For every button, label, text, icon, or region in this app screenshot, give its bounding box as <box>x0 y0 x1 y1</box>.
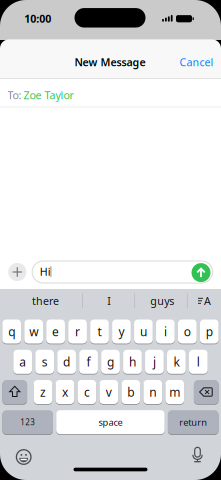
button[interactable]: To: <box>0 81 221 109</box>
staticText: 10:00 <box>24 11 51 26</box>
staticText: o <box>184 323 191 339</box>
button[interactable] <box>8 262 27 281</box>
button[interactable]: space <box>56 410 165 435</box>
button[interactable]: a <box>13 349 32 374</box>
button[interactable]: n <box>143 379 162 404</box>
staticText: Zoe Taylor <box>23 88 73 102</box>
button[interactable]: return <box>168 410 218 435</box>
staticText: j <box>153 354 156 370</box>
button[interactable]: b <box>121 379 140 404</box>
staticText: u <box>140 323 147 339</box>
staticText: m <box>169 384 180 400</box>
staticText: r <box>75 323 80 339</box>
button[interactable]: v <box>99 379 118 404</box>
staticText: A <box>204 294 211 308</box>
staticText: there <box>32 294 59 308</box>
button[interactable] <box>2 379 27 404</box>
button[interactable]: t <box>90 319 109 344</box>
staticText: n <box>149 384 156 400</box>
staticText: Hi <box>40 264 51 279</box>
button[interactable] <box>194 379 219 404</box>
staticText: I <box>107 294 111 308</box>
staticText: y <box>118 323 124 339</box>
button[interactable]: g <box>101 349 120 374</box>
staticText: p <box>206 323 213 339</box>
button[interactable]: f <box>79 349 98 374</box>
staticText: s <box>42 354 48 370</box>
button[interactable]: Cancel <box>174 52 218 72</box>
button[interactable] <box>191 263 210 282</box>
staticText: space <box>98 416 122 428</box>
button[interactable]: w <box>24 319 43 344</box>
button[interactable]: u <box>134 319 153 344</box>
staticText: b <box>127 384 134 400</box>
button[interactable]: s <box>35 349 54 374</box>
button[interactable]: q <box>2 319 21 344</box>
button[interactable]: c <box>77 379 96 404</box>
staticText: guys <box>150 294 174 308</box>
button[interactable] <box>15 448 32 466</box>
staticText: f <box>86 354 90 370</box>
staticText: New Message <box>74 55 145 69</box>
button[interactable]: y <box>112 319 131 344</box>
staticText: h <box>129 354 136 370</box>
staticText: v <box>106 384 112 400</box>
staticText: l <box>197 354 200 370</box>
staticText: z <box>40 384 46 400</box>
staticText: q <box>8 323 15 339</box>
button[interactable]: there <box>5 291 85 311</box>
button[interactable]: z <box>34 379 52 404</box>
button[interactable]: l <box>189 349 208 374</box>
button[interactable]: p <box>200 319 219 344</box>
button[interactable]: d <box>57 349 76 374</box>
button[interactable]: 123 <box>2 410 53 435</box>
button[interactable]: m <box>165 379 184 404</box>
staticText: To: <box>7 88 21 102</box>
staticText: c <box>84 384 90 400</box>
staticText: x <box>62 384 68 400</box>
staticText: e <box>52 323 59 339</box>
button[interactable]: k <box>167 349 186 374</box>
button[interactable]: e <box>46 319 65 344</box>
staticText: g <box>107 354 114 370</box>
staticText: return <box>179 416 207 428</box>
button[interactable]: x <box>56 379 74 404</box>
staticText: i <box>164 323 167 339</box>
button[interactable]: I <box>84 291 134 311</box>
button[interactable]: r <box>68 319 87 344</box>
button[interactable]: guys <box>137 291 187 311</box>
button[interactable]: A <box>192 292 214 310</box>
staticText: Cancel <box>179 55 213 69</box>
staticText: t <box>97 323 101 339</box>
button[interactable] <box>188 447 206 465</box>
staticText: w <box>29 323 38 339</box>
button[interactable]: i <box>156 319 175 344</box>
button[interactable]: j <box>145 349 164 374</box>
staticText: k <box>173 354 179 370</box>
staticText: a <box>19 354 26 370</box>
staticText: 123 <box>20 417 35 427</box>
button[interactable]: h <box>123 349 142 374</box>
button[interactable]: o <box>178 319 197 344</box>
staticText: d <box>63 354 70 370</box>
